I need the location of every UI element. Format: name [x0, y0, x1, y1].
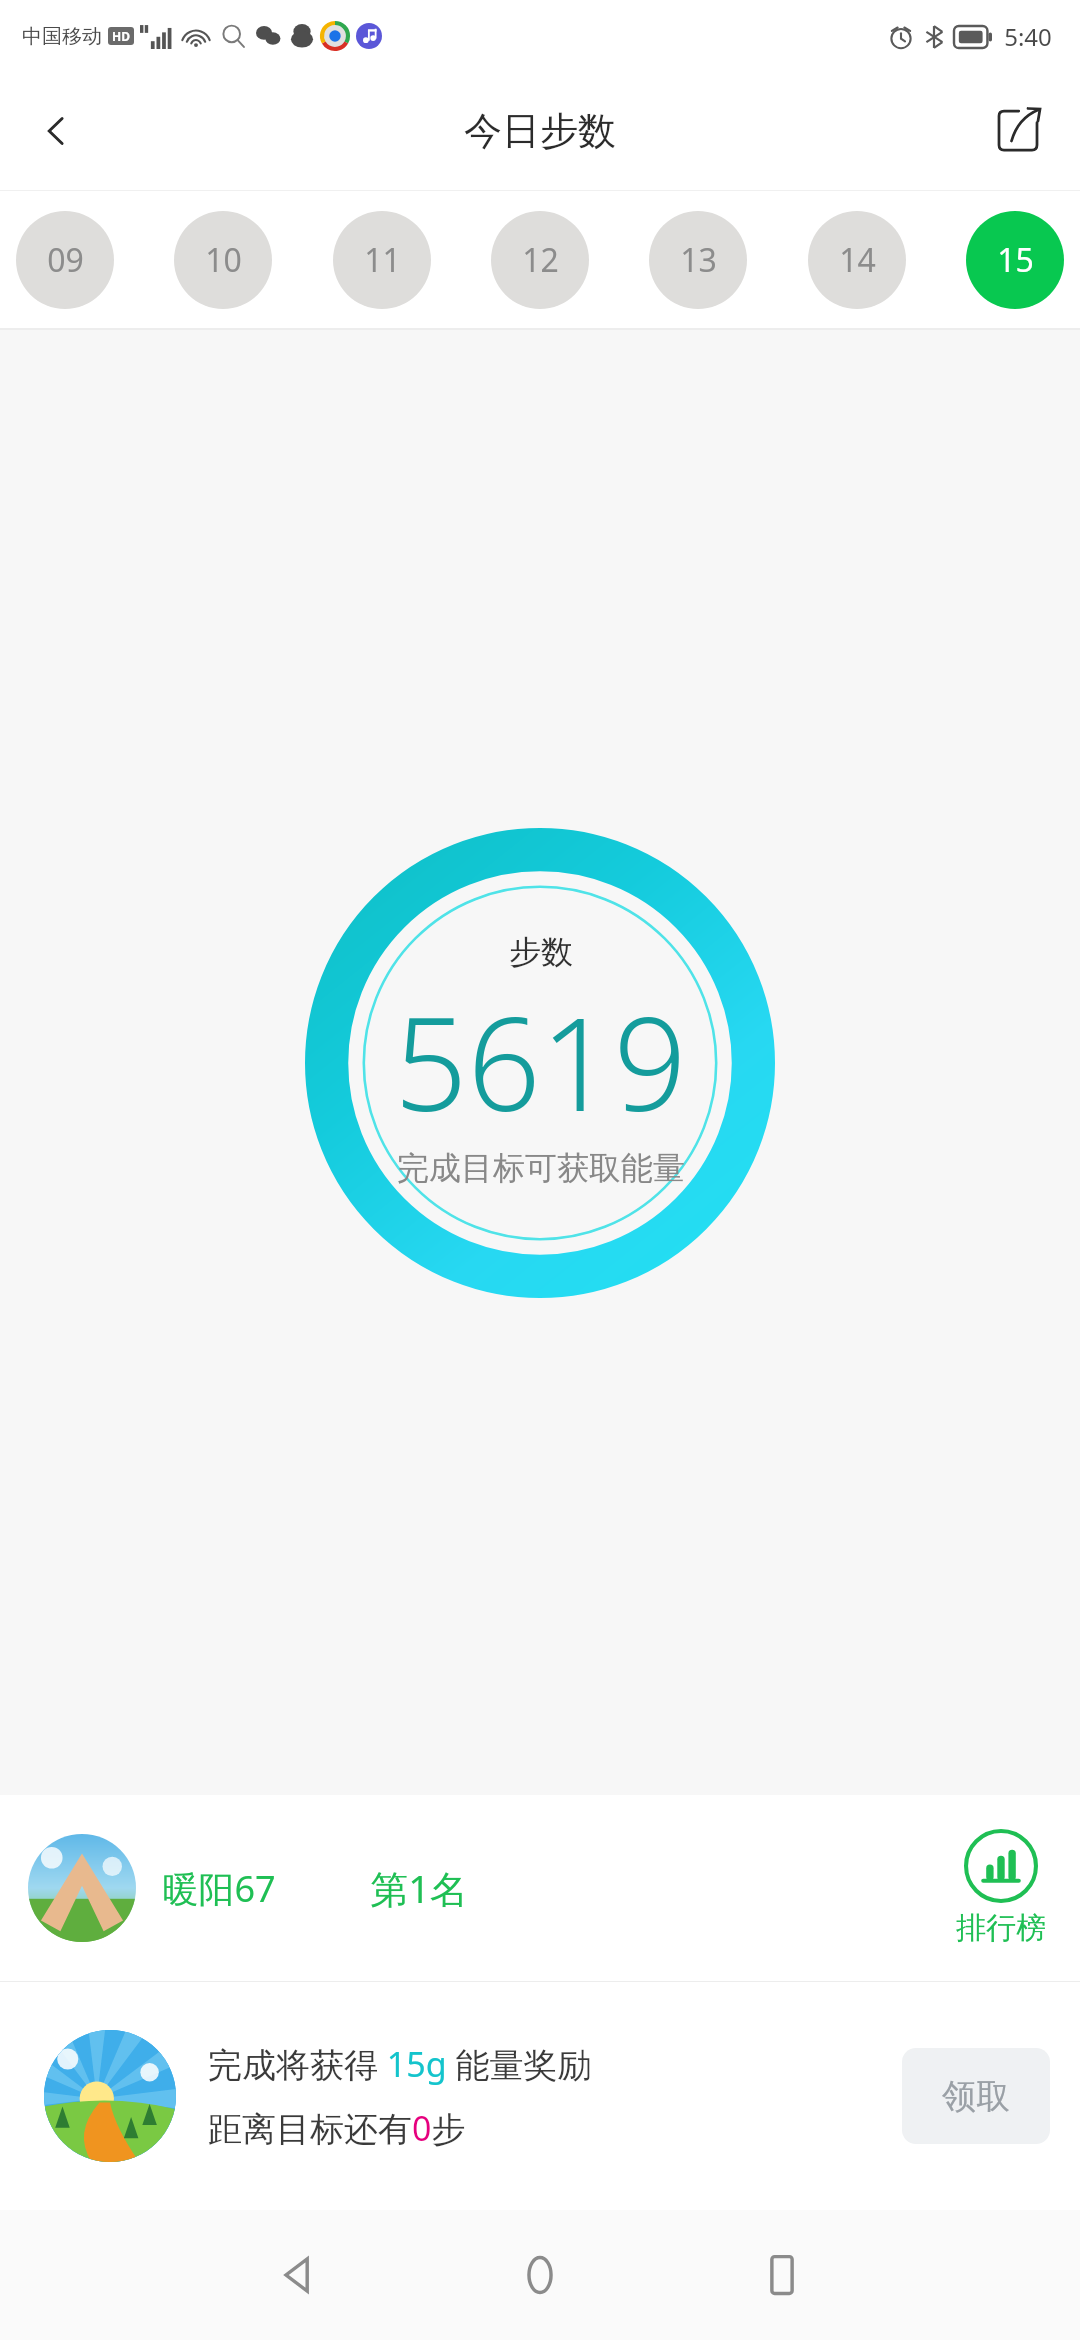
- staticText: 5:40: [1004, 20, 1052, 53]
- button[interactable]: 09: [16, 211, 114, 309]
- button[interactable]: 15: [966, 211, 1064, 309]
- staticText: 领取: [942, 2075, 1010, 2118]
- staticText: 距离目标还有0步: [208, 2105, 466, 2151]
- button[interactable]: 分享: [982, 93, 1058, 169]
- staticText: 15: [997, 238, 1034, 282]
- staticText: 13: [680, 238, 717, 282]
- staticText: 排行榜: [956, 1909, 1046, 1947]
- staticText: 今日步数: [464, 107, 616, 155]
- staticText: 14: [839, 238, 876, 282]
- staticText: 中国移动: [22, 24, 102, 49]
- button[interactable]: 暖阳67: [0, 1795, 1080, 1981]
- staticText: 11: [364, 238, 401, 282]
- staticText: 09: [47, 238, 84, 282]
- staticText: 5619: [394, 974, 687, 1148]
- button[interactable]: 10: [174, 211, 272, 309]
- button[interactable]: 13: [649, 211, 747, 309]
- staticText: 步数: [509, 932, 573, 972]
- button[interactable]: 14: [808, 211, 906, 309]
- button[interactable]: 最近任务: [727, 2220, 837, 2330]
- staticText: 10: [205, 238, 242, 282]
- staticText: 12: [522, 238, 559, 282]
- staticText: 暖阳67: [162, 1864, 276, 1913]
- button[interactable]: 返回: [18, 93, 94, 169]
- staticText: HD: [112, 28, 130, 44]
- staticText: 完成将获得 15g 能量奖励: [208, 2041, 592, 2087]
- button[interactable]: 排行榜: [950, 1827, 1052, 1949]
- button[interactable]: 领取: [902, 2048, 1050, 2144]
- button[interactable]: 返回: [243, 2220, 353, 2330]
- staticText: 第1名: [370, 1862, 468, 1914]
- button[interactable]: 11: [333, 211, 431, 309]
- button[interactable]: 12: [491, 211, 589, 309]
- staticText: 完成目标可获取能量: [397, 1148, 685, 1188]
- button[interactable]: 主页: [485, 2220, 595, 2330]
